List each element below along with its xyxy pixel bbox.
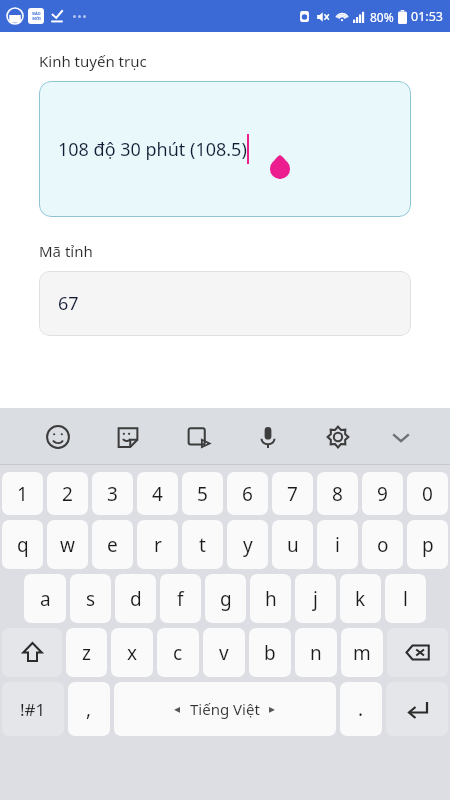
button[interactable]: p xyxy=(407,520,448,569)
button[interactable]: b xyxy=(249,628,291,677)
staticText: 9 xyxy=(377,481,388,507)
button[interactable]: , xyxy=(68,682,110,736)
button[interactable]: j xyxy=(295,574,336,623)
button[interactable]: 5 xyxy=(182,472,223,515)
button[interactable]: Voice input xyxy=(233,408,303,465)
staticText: k xyxy=(355,586,366,612)
staticText: 2 xyxy=(62,481,73,507)
staticText: r xyxy=(154,532,162,558)
button[interactable]: ◂ xyxy=(114,682,336,736)
staticText: 108 độ 30 phút (108.5) xyxy=(58,137,247,162)
staticText: Tiếng Việt xyxy=(190,699,260,719)
staticText: u xyxy=(287,532,299,558)
button[interactable]: i xyxy=(317,520,358,569)
staticText: a xyxy=(40,586,51,612)
button[interactable]: v xyxy=(203,628,245,677)
staticText: f xyxy=(177,586,184,612)
button[interactable]: 6 xyxy=(227,472,268,515)
staticText: 6 xyxy=(242,481,253,507)
staticText: v xyxy=(219,640,229,666)
button[interactable]: l xyxy=(385,574,426,623)
staticText: q xyxy=(17,532,29,558)
staticText: m xyxy=(353,640,371,666)
button[interactable]: k xyxy=(340,574,381,623)
button[interactable]: g xyxy=(205,574,246,623)
button[interactable]: Hide keyboard xyxy=(373,408,428,465)
staticText: . xyxy=(358,696,364,722)
button[interactable]: 4 xyxy=(137,472,178,515)
staticText: y xyxy=(243,532,253,558)
button[interactable]: Sticker xyxy=(93,408,163,465)
staticText: w xyxy=(60,532,75,558)
staticText: g xyxy=(220,586,232,612)
button[interactable]: 8 xyxy=(317,472,358,515)
button[interactable]: . xyxy=(340,682,382,736)
staticText: 4 xyxy=(152,481,163,507)
staticText: h xyxy=(265,586,277,612)
staticText: BÁO MỚI xyxy=(32,11,41,21)
staticText: b xyxy=(264,640,276,666)
staticText: !#1 xyxy=(20,698,46,721)
staticText: x xyxy=(127,640,138,666)
button[interactable]: Emoji xyxy=(22,408,93,465)
staticText: i xyxy=(335,532,340,558)
button[interactable]: GIF xyxy=(163,408,233,465)
button[interactable]: a xyxy=(24,574,66,623)
button[interactable]: 2 xyxy=(47,472,88,515)
button[interactable]: n xyxy=(295,628,337,677)
button[interactable]: r xyxy=(137,520,178,569)
staticText: 67 xyxy=(58,291,79,316)
staticText: 8 xyxy=(332,481,343,507)
staticText: 80% xyxy=(370,9,394,25)
button[interactable]: d xyxy=(115,574,156,623)
button[interactable]: Shift xyxy=(2,628,62,677)
staticText: t xyxy=(199,532,206,558)
staticText: s xyxy=(86,586,96,612)
button[interactable]: 3 xyxy=(92,472,133,515)
button[interactable]: z xyxy=(66,628,107,677)
staticText: e xyxy=(107,532,118,558)
staticText: d xyxy=(130,586,142,612)
button[interactable]: s xyxy=(70,574,111,623)
staticText: n xyxy=(310,640,322,666)
button[interactable]: 1 xyxy=(2,472,43,515)
button[interactable]: f xyxy=(160,574,201,623)
staticText: 3 xyxy=(107,481,118,507)
button[interactable]: Enter xyxy=(386,682,448,736)
button[interactable]: 7 xyxy=(272,472,313,515)
button[interactable]: y xyxy=(227,520,268,569)
staticText: Mã tỉnh xyxy=(39,241,93,261)
button[interactable]: e xyxy=(92,520,133,569)
button[interactable]: t xyxy=(182,520,223,569)
staticText: 01:53 xyxy=(411,8,443,25)
button[interactable]: x xyxy=(111,628,153,677)
button[interactable]: 108 độ 30 phút (108.5) xyxy=(39,81,411,217)
button[interactable]: Backspace xyxy=(387,628,448,677)
staticText: 1 xyxy=(17,481,28,507)
button[interactable]: w xyxy=(47,520,88,569)
button[interactable]: q xyxy=(2,520,43,569)
staticText: j xyxy=(313,586,318,612)
button[interactable]: 67 xyxy=(39,271,411,336)
staticText: ◂ xyxy=(174,702,181,716)
staticText: c xyxy=(173,640,183,666)
staticText: 0 xyxy=(422,481,433,507)
staticText: Kinh tuyến trục xyxy=(39,51,147,71)
staticText: ▸ xyxy=(269,702,276,716)
button[interactable]: !#1 xyxy=(2,682,64,736)
staticText: o xyxy=(377,532,389,558)
staticText: 5 xyxy=(197,481,208,507)
button[interactable]: h xyxy=(250,574,291,623)
staticText: z xyxy=(82,640,91,666)
button[interactable]: m xyxy=(341,628,383,677)
button[interactable]: 9 xyxy=(362,472,403,515)
staticText: p xyxy=(422,532,434,558)
button[interactable]: Settings xyxy=(303,408,373,465)
button[interactable]: 0 xyxy=(407,472,448,515)
button[interactable]: u xyxy=(272,520,313,569)
staticText: , xyxy=(86,696,92,722)
staticText: l xyxy=(403,586,408,612)
button[interactable]: o xyxy=(362,520,403,569)
staticText: 7 xyxy=(287,481,298,507)
button[interactable]: c xyxy=(157,628,199,677)
